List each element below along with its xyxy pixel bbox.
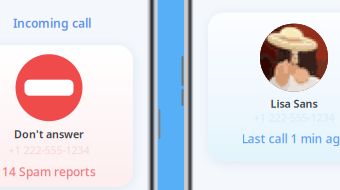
staticText: Last call 1 min ago [241, 130, 340, 146]
staticText: +1 222-555-1234 [253, 110, 334, 125]
staticText: 14 Spam reports [2, 163, 96, 179]
staticText: Lisa Sans [270, 96, 317, 111]
staticText: +1 222-555-1234 [8, 143, 89, 157]
staticText: Don't answer [14, 127, 84, 141]
staticText: Incoming call [13, 15, 91, 31]
